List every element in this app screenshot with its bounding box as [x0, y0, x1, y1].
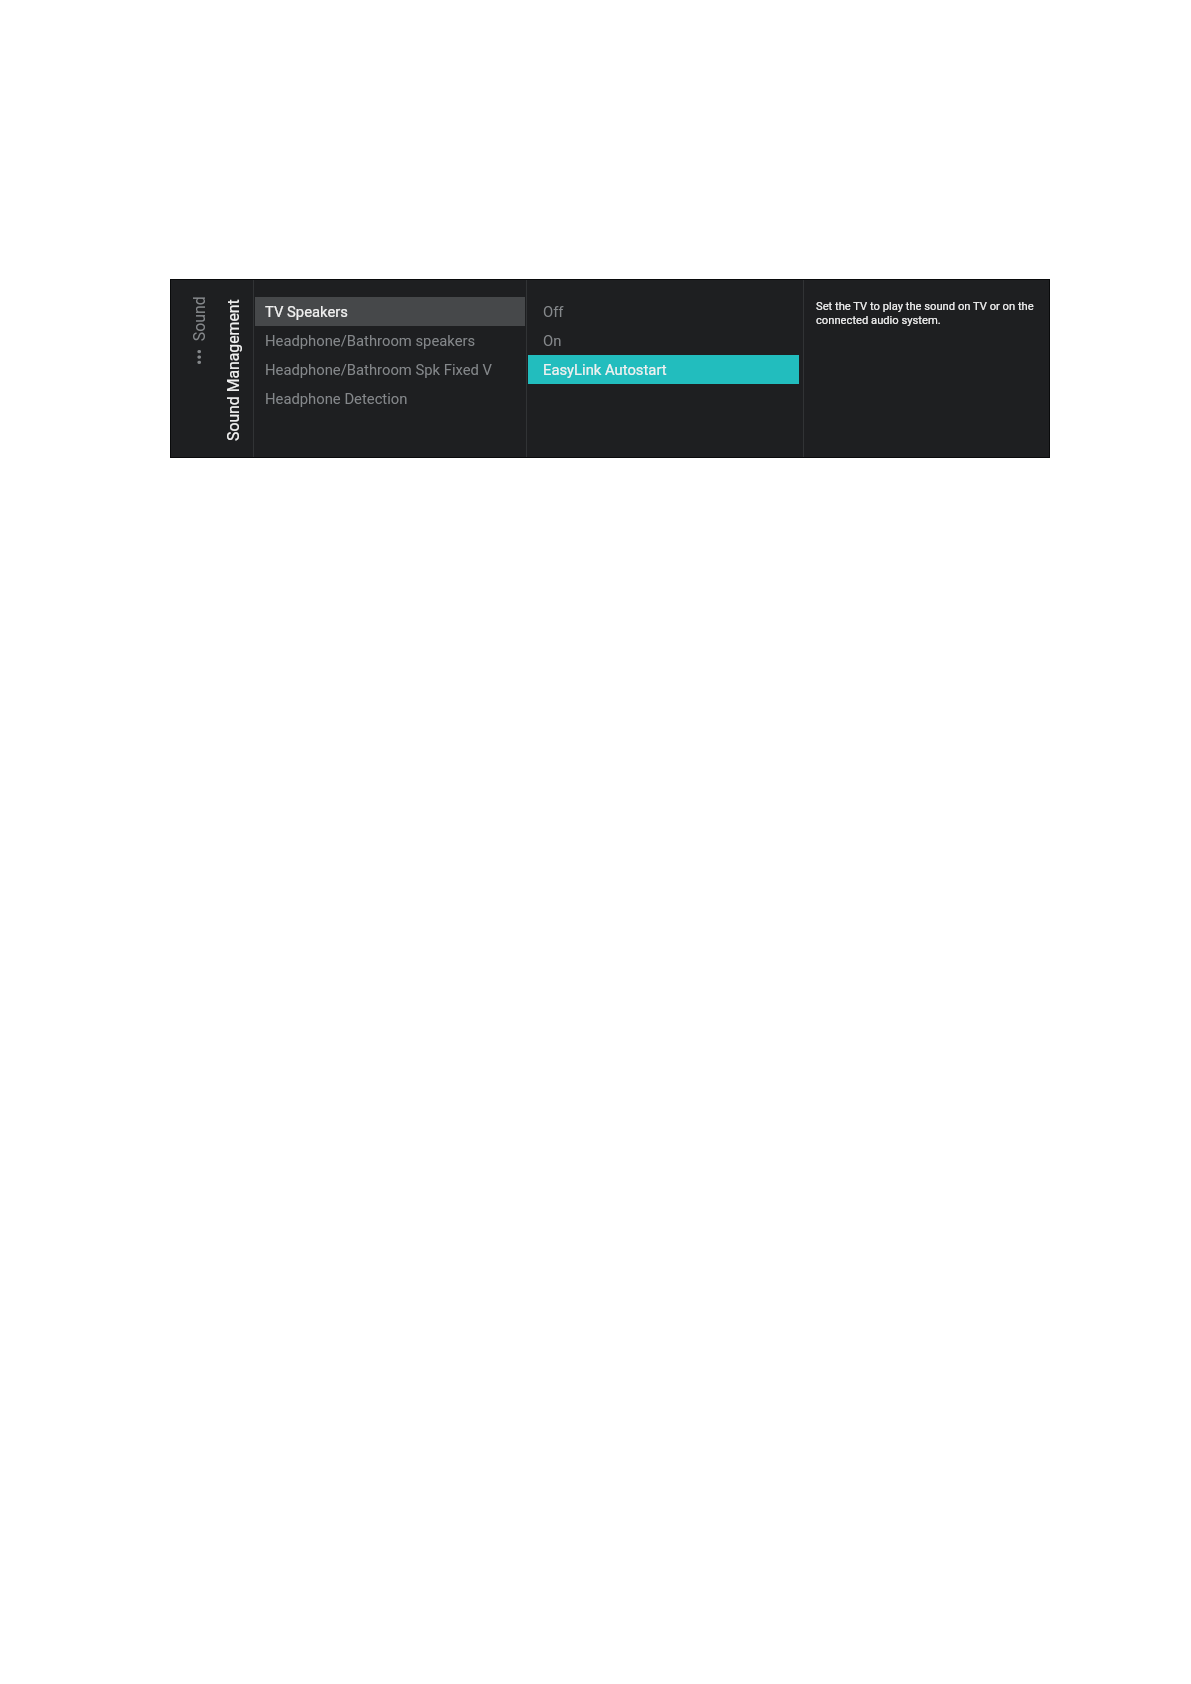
button[interactable]: EasyLink Autostart	[528, 355, 799, 384]
button[interactable]: Sound	[182, 280, 208, 457]
staticText: Set the TV to play the sound on TV or on…	[816, 300, 1038, 326]
staticText: Headphone Detection	[265, 390, 408, 407]
button[interactable]: Headphone/Bathroom Spk Fixed V	[255, 355, 525, 384]
staticText: Headphone/Bathroom Spk Fixed V	[265, 361, 492, 378]
staticText: On	[543, 332, 562, 349]
button[interactable]: Headphone Detection	[255, 384, 525, 413]
staticText: ••• Sound	[190, 296, 209, 365]
button[interactable]: Sound Management	[216, 280, 248, 457]
button[interactable]: Off	[528, 297, 799, 326]
button[interactable]: TV Speakers	[255, 297, 525, 326]
staticText: Sound Management	[224, 299, 243, 441]
staticText: Off	[543, 303, 564, 320]
staticText: EasyLink Autostart	[543, 361, 667, 378]
button[interactable]: Headphone/Bathroom speakers	[255, 326, 525, 355]
button[interactable]: On	[528, 326, 799, 355]
staticText: TV Speakers	[265, 303, 348, 320]
staticText: Headphone/Bathroom speakers	[265, 332, 476, 349]
